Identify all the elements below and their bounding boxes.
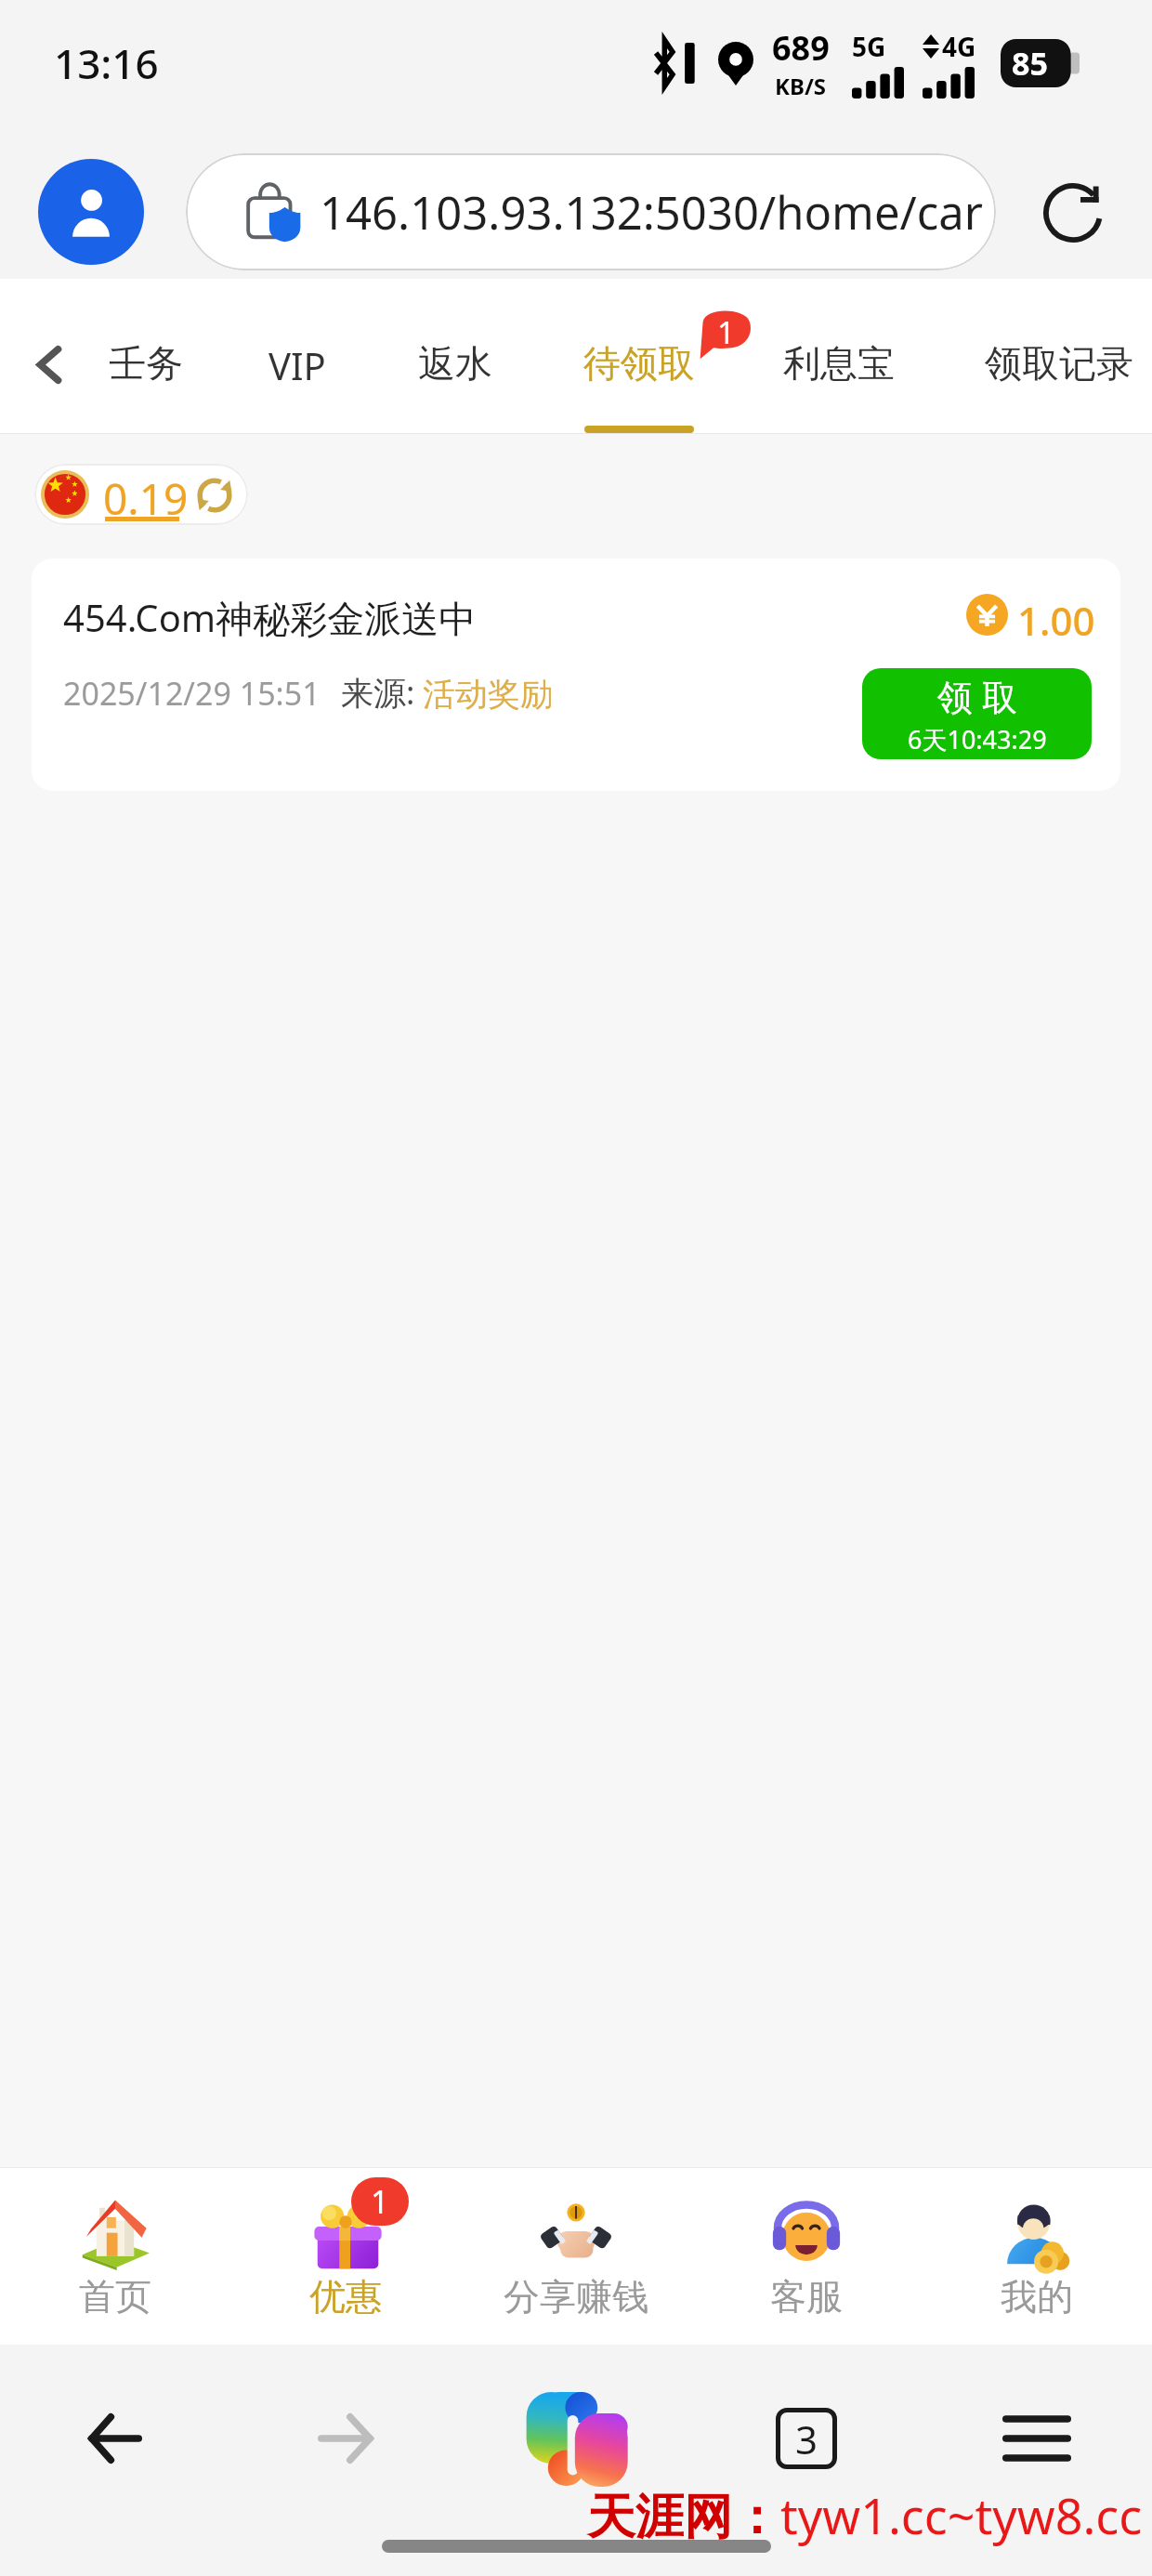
staticText: 领 取 — [937, 672, 1017, 720]
staticText: VIP — [268, 340, 326, 390]
button[interactable]: 146.103.93.132:5030/home/car — [186, 153, 996, 270]
staticText: 来源: — [341, 670, 415, 715]
staticText: KB/S — [775, 71, 827, 101]
button[interactable]: Menu — [922, 2345, 1152, 2532]
staticText: 壬务 — [109, 340, 183, 387]
button[interactable]: Profile — [38, 159, 144, 265]
button[interactable]: Assistant — [461, 2345, 691, 2532]
staticText: 分享赚钱 — [504, 2274, 648, 2320]
staticText: 返水 — [418, 340, 492, 387]
staticText: 优惠 — [309, 2274, 382, 2320]
button[interactable]: 返水 — [344, 279, 567, 433]
staticText: 利息宝 — [783, 340, 895, 387]
staticText: 我的 — [1001, 2274, 1073, 2320]
staticText: 1 — [717, 311, 735, 353]
staticText: 146.103.93.132:5030/home/car — [320, 181, 984, 243]
button[interactable]: Tabs — [691, 2345, 922, 2532]
staticText: 5G — [852, 29, 886, 64]
staticText: 天涯网： — [587, 2487, 780, 2548]
button[interactable]: 1 — [230, 2168, 461, 2345]
staticText: 85 — [1012, 42, 1048, 85]
staticText: 2025/12/29 15:51 — [63, 672, 321, 715]
button[interactable]: Back — [0, 2345, 230, 2532]
staticText: 1.00 — [1017, 594, 1095, 647]
button[interactable]: 客服 — [691, 2168, 922, 2345]
button[interactable]: 454.Com神秘彩金派送中 — [32, 559, 1120, 791]
button[interactable]: 我的 — [922, 2168, 1152, 2345]
staticText: 4G — [942, 29, 976, 64]
staticText: 客服 — [770, 2274, 843, 2320]
button[interactable]: 分享赚钱 — [461, 2168, 691, 2345]
staticText: 待领取 — [583, 340, 695, 387]
staticText: 689 — [772, 25, 830, 71]
staticText: 454.Com神秘彩金派送中 — [63, 592, 477, 643]
staticText: 13:16 — [54, 35, 159, 91]
staticText: 领取记录 — [985, 340, 1133, 387]
staticText: 活动奖励 — [423, 674, 553, 715]
staticText: 1 — [371, 2180, 389, 2223]
button[interactable]: 利息宝 — [727, 279, 950, 433]
staticText: 0.19 — [103, 469, 189, 525]
staticText: tyw1.cc~tyw8.cc — [780, 2482, 1143, 2548]
button[interactable]: 领取记录 — [948, 279, 1152, 433]
button[interactable]: Back — [7, 322, 91, 406]
button[interactable]: Forward — [230, 2345, 461, 2532]
button[interactable]: 待领取 — [528, 279, 751, 433]
button[interactable]: Reload — [1030, 170, 1116, 256]
button[interactable]: 0.19 — [34, 464, 248, 525]
staticText: 3 — [795, 2412, 818, 2465]
button[interactable]: 首页 — [0, 2168, 230, 2345]
button[interactable]: 领 取 — [862, 668, 1092, 759]
button[interactable]: 壬务 — [34, 279, 257, 433]
staticText: 6天10:43:29 — [908, 722, 1047, 756]
staticText: 首页 — [79, 2274, 151, 2320]
button[interactable]: VIP — [186, 279, 409, 433]
